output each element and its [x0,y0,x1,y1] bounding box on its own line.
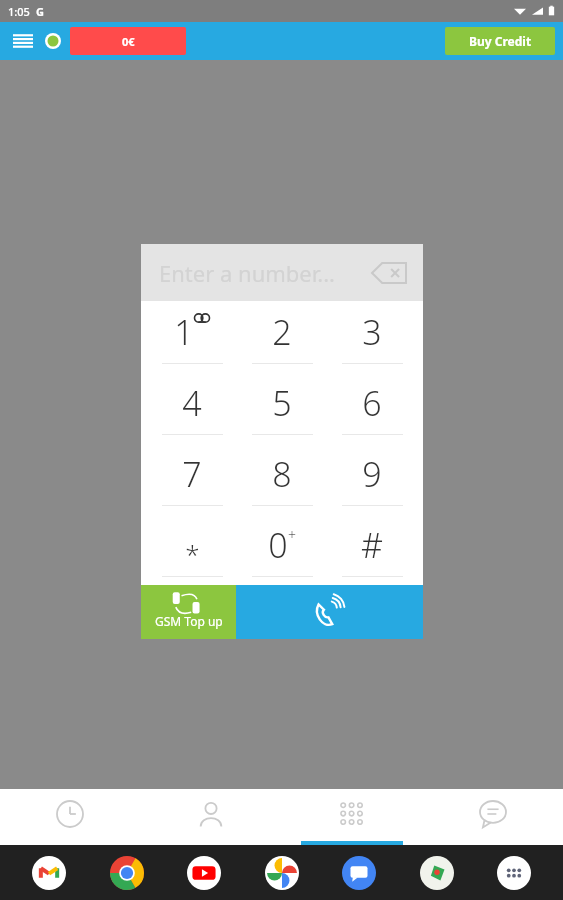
button[interactable]: 1 [147,301,237,372]
button[interactable]: All apps [495,854,533,892]
staticText: + [288,525,296,544]
button[interactable]: * [147,514,237,585]
staticText: 4 [182,380,202,426]
button[interactable]: 0€ [70,27,186,55]
button[interactable]: Keypad [281,789,422,845]
staticText: 0€ [122,34,135,49]
staticText: 7 [182,451,202,497]
staticText: 5 [272,380,292,426]
staticText: 6 [362,380,382,426]
button[interactable]: 6 [327,372,417,443]
button[interactable]: 8 [237,443,327,514]
button[interactable]: Status [42,30,64,52]
button[interactable]: Chrome [108,854,146,892]
button[interactable]: 0 [237,514,327,585]
button[interactable]: Messages [340,854,378,892]
button[interactable]: Photos [263,854,301,892]
staticText: 0 [268,522,288,568]
button[interactable]: YouTube [185,854,223,892]
button[interactable]: 4 [147,372,237,443]
staticText: 2 [272,309,292,355]
button[interactable]: Gmail [30,854,68,892]
staticText: GSM Top up [155,613,223,629]
staticText: Enter a number... [159,258,336,288]
staticText: 1 [174,309,194,355]
button[interactable]: Backspace [369,258,409,288]
button[interactable]: 5 [237,372,327,443]
staticText: 9 [362,451,382,497]
button[interactable]: Maps [418,854,456,892]
staticText: 3 [362,309,382,355]
button[interactable]: Messages [422,789,563,845]
staticText: 8 [272,451,292,497]
button[interactable]: Menu [8,26,38,56]
button[interactable]: Buy Credit [445,27,555,55]
button[interactable]: # [327,514,417,585]
button[interactable]: 9 [327,443,417,514]
button[interactable]: Recents [0,789,140,845]
button[interactable]: Call [236,585,423,639]
button[interactable]: 2 [237,301,327,372]
button[interactable]: GSM Top up [141,585,236,639]
button[interactable]: Contacts [140,789,281,845]
button[interactable]: 7 [147,443,237,514]
staticText: 1:05 [8,4,30,19]
button[interactable]: 3 [327,301,417,372]
staticText: * [185,536,200,571]
staticText: Buy Credit [469,33,532,49]
staticText: G [36,4,44,19]
staticText: # [361,522,383,568]
